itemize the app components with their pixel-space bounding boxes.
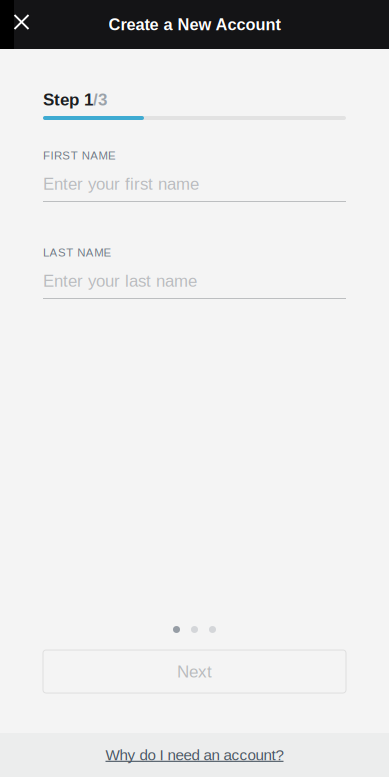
staticText: Step 1	[43, 90, 93, 109]
button[interactable]: Close	[0, 0, 43, 44]
button[interactable]: Why do I need an account?	[0, 733, 389, 777]
button[interactable]: Next	[43, 650, 346, 693]
button[interactable]: FIRST NAME	[43, 150, 346, 202]
staticText: Next	[177, 662, 212, 681]
staticText: /3	[93, 90, 107, 109]
staticText: Enter your first name	[43, 175, 199, 193]
staticText: Why do I need an account?	[105, 746, 283, 763]
staticText: LAST NAME	[43, 246, 112, 259]
staticText: Create a New Account	[108, 15, 280, 34]
button[interactable]: LAST NAME	[43, 247, 346, 299]
staticText: FIRST NAME	[43, 149, 116, 162]
staticText: Enter your last name	[43, 272, 197, 290]
